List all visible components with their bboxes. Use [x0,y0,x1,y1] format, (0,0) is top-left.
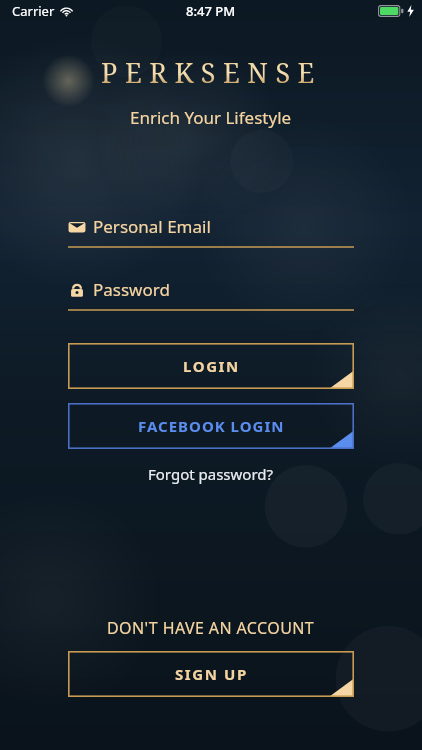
staticText: PERKSENSE [101,54,322,91]
staticText: Forgot password? [148,464,274,484]
button[interactable]: FACEBOOK LOGIN [68,403,354,449]
staticText: Password [93,278,170,301]
button[interactable]: Forgot password? [138,461,284,487]
button[interactable]: Password [68,278,354,311]
staticText: Enrich Your Lifestyle [130,106,292,129]
staticText: SIGN UP [175,664,248,684]
button[interactable]: LOGIN [68,343,354,389]
button[interactable]: Personal Email [68,215,354,248]
staticText: Personal Email [93,215,211,238]
staticText: FACEBOOK LOGIN [138,416,285,436]
staticText: 8:47 PM [186,2,236,20]
button[interactable]: SIGN UP [68,651,354,697]
staticText: LOGIN [183,356,240,376]
staticText: Carrier [12,2,55,20]
staticText: DON'T HAVE AN ACCOUNT [107,617,315,639]
